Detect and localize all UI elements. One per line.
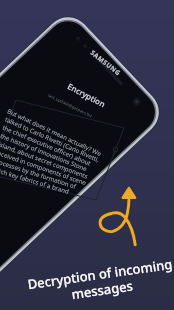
button[interactable] xyxy=(0,0,174,310)
